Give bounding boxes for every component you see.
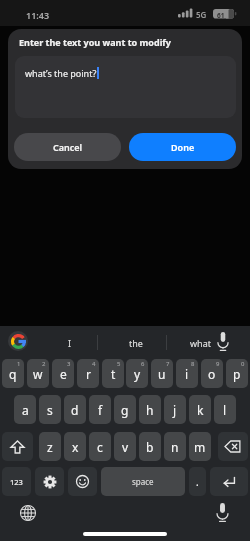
staticText: Done <box>171 141 195 153</box>
staticText: Enter the text you want to modify <box>19 36 171 48</box>
button[interactable] <box>206 498 238 526</box>
staticText: the <box>129 337 143 349</box>
staticText: p <box>233 366 241 382</box>
staticText: s <box>47 402 53 418</box>
staticText: e <box>60 366 67 382</box>
staticText: v <box>122 439 129 455</box>
staticText: 0 <box>241 360 245 368</box>
staticText: y <box>134 366 141 382</box>
button[interactable]: u <box>151 359 173 388</box>
staticText: t <box>111 366 116 382</box>
button[interactable]: h <box>139 395 161 424</box>
staticText: I <box>68 337 72 349</box>
staticText: h <box>146 402 154 418</box>
button[interactable]: k <box>189 395 211 424</box>
staticText: a <box>22 402 29 418</box>
staticText: 9 <box>216 360 220 368</box>
staticText: w <box>33 366 43 382</box>
staticText: 3 <box>67 360 71 368</box>
staticText: 4 <box>92 360 96 368</box>
staticText: Cancel <box>53 141 83 153</box>
button[interactable]: l <box>214 395 236 424</box>
button[interactable]: y <box>126 359 148 388</box>
staticText: g <box>121 402 129 418</box>
button[interactable]: v <box>114 432 136 461</box>
button[interactable] <box>68 467 97 496</box>
button[interactable]: s <box>39 395 61 424</box>
button[interactable] <box>35 467 64 496</box>
staticText: 123 <box>10 477 23 487</box>
staticText: o <box>208 366 216 382</box>
staticText: c <box>97 439 103 455</box>
staticText: b <box>146 439 154 455</box>
button[interactable]: x <box>64 432 86 461</box>
button[interactable]: c <box>89 432 111 461</box>
button[interactable]: Cancel <box>14 133 121 161</box>
button[interactable]: m <box>189 432 211 461</box>
button[interactable]: t <box>102 359 124 388</box>
button[interactable]: n <box>164 432 186 461</box>
button[interactable]: i <box>176 359 198 388</box>
staticText: 11:43 <box>26 9 50 21</box>
staticText: 5 <box>117 360 121 368</box>
button[interactable]: w <box>27 359 49 388</box>
staticText: u <box>158 366 166 382</box>
button[interactable] <box>8 331 28 351</box>
staticText: z <box>47 439 53 455</box>
staticText: k <box>197 402 204 418</box>
staticText: 6 <box>141 360 145 368</box>
button[interactable]: z <box>39 432 61 461</box>
staticText: 2 <box>42 360 46 368</box>
button[interactable]: a <box>14 395 36 424</box>
staticText: x <box>72 439 79 455</box>
staticText: what <box>190 337 211 349</box>
button[interactable] <box>210 467 248 496</box>
staticText: 61 <box>217 11 225 20</box>
button[interactable]: the <box>112 331 160 355</box>
staticText: i <box>185 366 189 382</box>
button[interactable]: p <box>226 359 248 388</box>
button[interactable] <box>218 432 248 461</box>
staticText: n <box>171 439 179 455</box>
button[interactable]: . <box>189 467 206 496</box>
button[interactable]: q <box>2 359 24 388</box>
button[interactable] <box>2 432 33 461</box>
button[interactable]: I <box>55 331 85 355</box>
staticText: f <box>98 402 103 418</box>
button[interactable]: what <box>180 331 220 355</box>
button[interactable]: space <box>101 467 185 496</box>
staticText: . <box>196 475 199 489</box>
button[interactable]: Done <box>129 133 236 161</box>
staticText: m <box>194 439 206 455</box>
staticText: r <box>86 366 91 382</box>
button[interactable]: f <box>89 395 111 424</box>
staticText: l <box>223 402 227 418</box>
staticText: q <box>9 366 17 382</box>
staticText: d <box>71 402 79 418</box>
staticText: what’s the point? <box>25 67 97 79</box>
button[interactable]: e <box>52 359 74 388</box>
staticText: 7 <box>166 360 170 368</box>
button[interactable]: o <box>201 359 223 388</box>
button[interactable]: b <box>139 432 161 461</box>
button[interactable]: r <box>77 359 99 388</box>
button[interactable]: d <box>64 395 86 424</box>
button[interactable]: g <box>114 395 136 424</box>
staticText: space <box>132 476 154 487</box>
staticText: 5G <box>196 9 207 20</box>
staticText: 8 <box>191 360 195 368</box>
button[interactable]: 123 <box>2 467 31 496</box>
button[interactable]: j <box>164 395 186 424</box>
staticText: 1 <box>17 360 21 368</box>
button[interactable] <box>12 499 44 527</box>
staticText: j <box>173 402 177 418</box>
